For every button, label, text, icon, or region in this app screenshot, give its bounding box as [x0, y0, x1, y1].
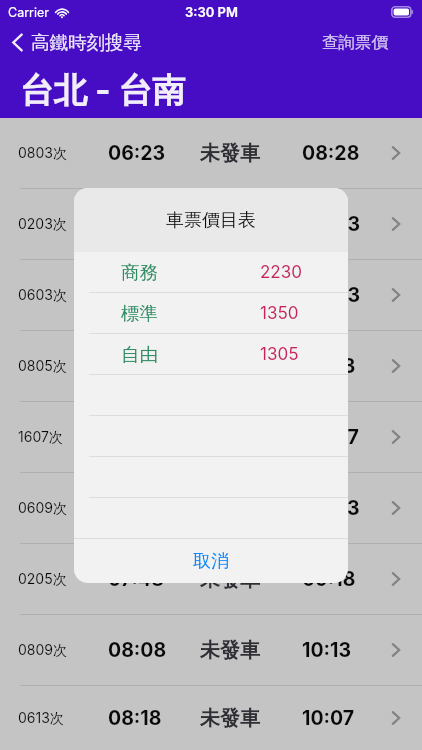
button[interactable]: 自由	[74, 334, 348, 375]
staticText: 0609次	[18, 499, 68, 517]
staticText: 1350	[260, 303, 299, 324]
staticText: 1607次	[18, 428, 63, 446]
button[interactable]: 標準	[74, 293, 348, 334]
other: Details	[392, 217, 400, 231]
button[interactable]	[74, 498, 348, 539]
staticText: 自由	[121, 343, 158, 366]
button[interactable]: 0205次	[0, 544, 422, 615]
other: Details	[392, 359, 400, 373]
button[interactable]: 0613次	[0, 686, 422, 750]
staticText: 06:45	[108, 283, 166, 307]
staticText: 2230	[260, 262, 302, 283]
staticText: 09:13	[302, 354, 356, 378]
staticText: 未發車	[200, 567, 260, 592]
other: Details	[392, 430, 400, 444]
staticText: 08:08	[108, 638, 167, 662]
staticText: 08:43	[302, 283, 361, 307]
staticText: 未發車	[200, 283, 260, 308]
staticText: 08:03	[302, 212, 361, 236]
button[interactable]: 0603次	[0, 260, 422, 331]
staticText: 未發車	[200, 141, 260, 166]
staticText: 未發車	[200, 638, 260, 663]
staticText: 09:33	[302, 496, 360, 520]
button[interactable]: 高鐵時刻搜尋	[11, 31, 142, 54]
button[interactable]: 0609次	[0, 473, 422, 544]
staticText: 06:23	[108, 141, 166, 165]
button[interactable]	[74, 457, 348, 498]
button[interactable]: 取消	[74, 539, 348, 583]
staticText: 未發車	[200, 706, 260, 731]
staticText: 07:08	[108, 354, 164, 378]
staticText: 0809次	[18, 641, 68, 659]
staticText: 0205次	[18, 570, 67, 588]
other: Details	[392, 288, 400, 302]
other: Details	[392, 572, 400, 586]
staticText: 10:07	[302, 706, 355, 730]
button[interactable]	[74, 375, 348, 416]
staticText: 1305	[260, 344, 299, 365]
button[interactable]: 0203次	[0, 189, 422, 260]
staticText: 09:47	[302, 425, 359, 449]
staticText: 未發車	[200, 212, 260, 237]
staticText: Carrier	[8, 5, 49, 20]
staticText: 0203次	[18, 215, 67, 233]
staticText: 未發車	[200, 354, 260, 379]
staticText: 07:35	[108, 496, 164, 520]
button[interactable]: 商務	[74, 252, 348, 293]
button[interactable]: 查詢票價	[322, 32, 388, 53]
other: Details	[392, 643, 400, 657]
staticText: 0613次	[18, 709, 64, 727]
button[interactable]: 0803次	[0, 118, 422, 189]
other: Details	[392, 501, 400, 515]
staticText: 08:18	[108, 706, 162, 730]
staticText: 07:48	[108, 567, 164, 591]
staticText: 高鐵時刻搜尋	[31, 31, 142, 54]
staticText: 商務	[121, 261, 158, 284]
staticText: 車票價目表	[166, 209, 256, 232]
button[interactable]: 0805次	[0, 331, 422, 402]
staticText: 10:13	[302, 638, 352, 662]
button[interactable]: 1607次	[0, 402, 422, 473]
staticText: 08:28	[302, 141, 360, 165]
staticText: 09:18	[302, 567, 356, 591]
other: Details	[392, 711, 400, 725]
staticText: 標準	[121, 302, 158, 325]
button[interactable]	[74, 416, 348, 457]
staticText: 0803次	[18, 144, 67, 162]
staticText: 取消	[193, 550, 229, 573]
staticText: 未發車	[200, 496, 260, 521]
staticText: 0805次	[18, 357, 67, 375]
button[interactable]: 0809次	[0, 615, 422, 686]
staticText: 0603次	[18, 286, 67, 304]
other: Details	[392, 146, 400, 160]
staticText: 3:30 PM	[185, 4, 238, 20]
staticText: 台北 - 台南	[20, 70, 186, 112]
staticText: 查詢票價	[322, 32, 388, 53]
